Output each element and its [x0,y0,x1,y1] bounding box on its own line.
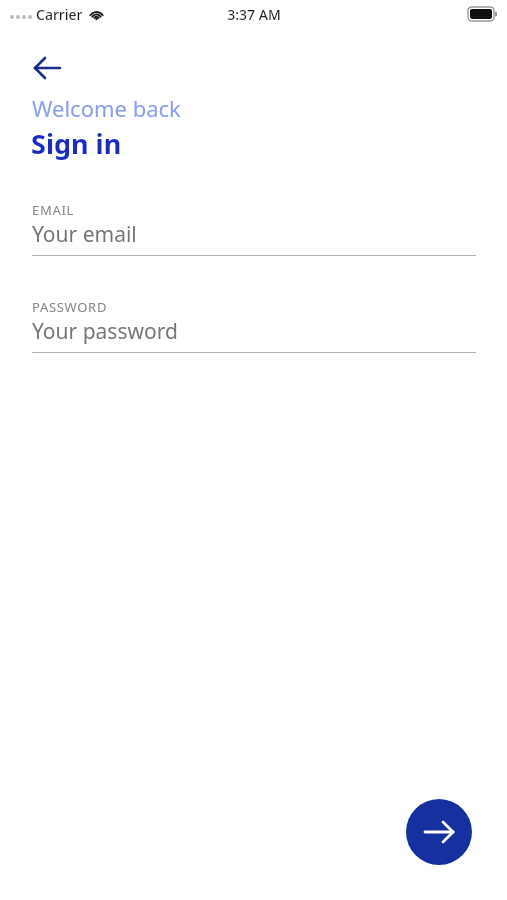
staticText: Your email [32,220,137,249]
staticText: Welcome back [32,93,181,123]
staticText: Carrier [36,5,83,24]
staticText: EMAIL [32,201,75,219]
button[interactable]: Continue [406,799,472,865]
button[interactable]: Back [24,48,68,92]
staticText: PASSWORD [32,298,108,316]
staticText: Sign in [31,125,122,162]
button[interactable]: PASSWORD [32,298,476,356]
staticText: Your password [32,317,178,346]
button[interactable]: EMAIL [32,201,476,259]
staticText: 3:37 AM [227,5,281,24]
